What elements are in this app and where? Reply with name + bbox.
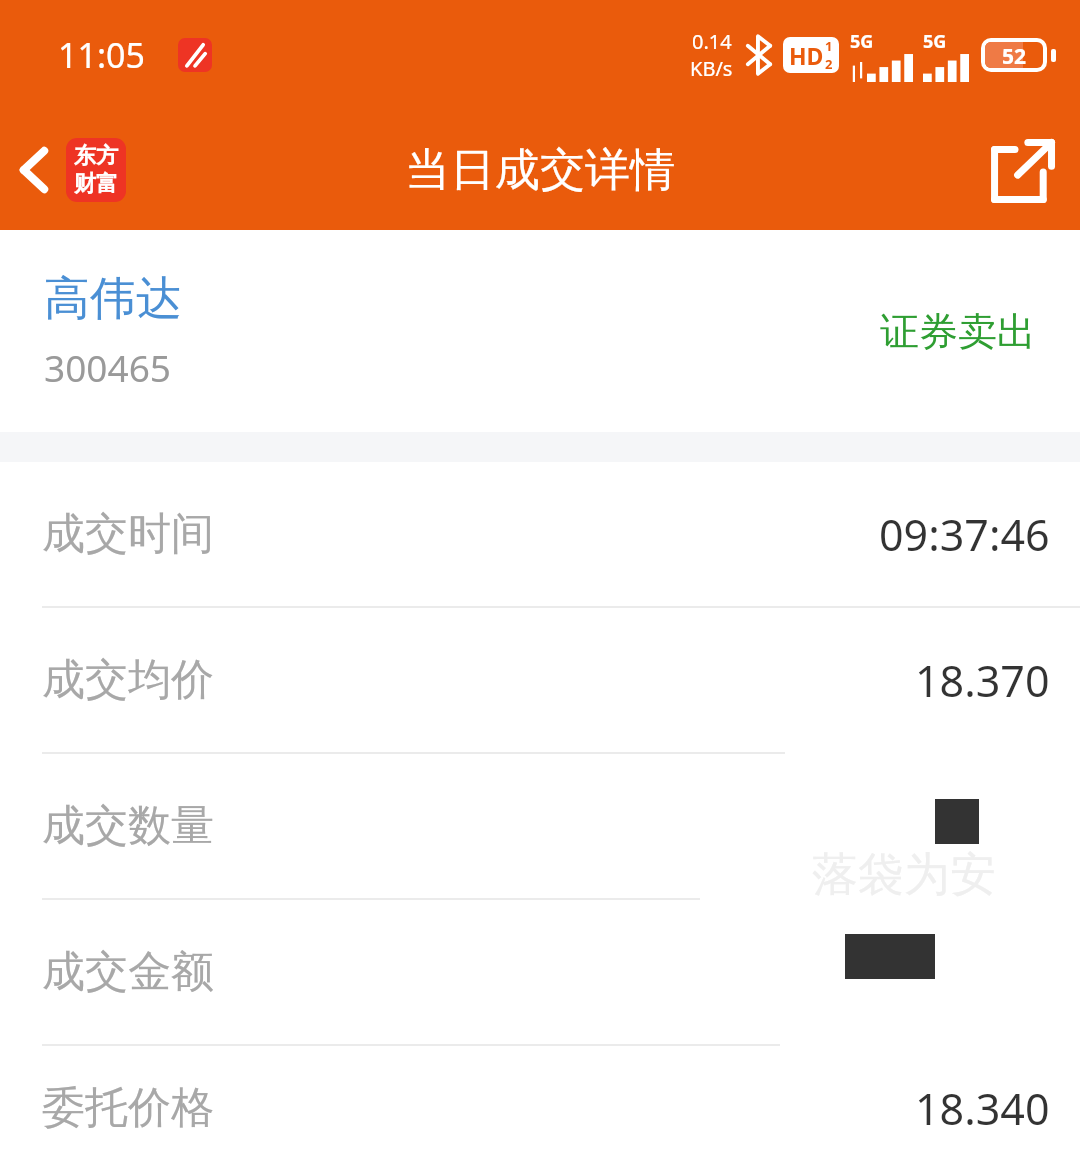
staticText: 2: [825, 55, 833, 73]
staticText: 成交数量: [42, 799, 214, 853]
button[interactable]: 委托价格: [0, 1046, 1080, 1170]
staticText: 5G: [923, 29, 947, 54]
staticText: 5G: [850, 29, 874, 54]
staticText: KB/s: [690, 55, 733, 82]
staticText: 委托价格: [42, 1081, 214, 1135]
button[interactable]: 成交时间: [0, 462, 1080, 606]
staticText: 18.340: [915, 1079, 1050, 1138]
staticText: HD: [789, 40, 824, 71]
staticText: 财富: [74, 170, 118, 198]
staticText: 1: [825, 37, 833, 55]
button[interactable]: 成交数量: [0, 754, 1080, 898]
button[interactable]: Back: [0, 124, 138, 216]
button[interactable]: Share: [976, 124, 1080, 216]
staticText: 证券卖出: [880, 307, 1036, 356]
staticText: 高伟达: [44, 270, 182, 328]
button[interactable]: 成交均价: [0, 608, 1080, 752]
staticText: 52: [1002, 42, 1027, 68]
staticText: 落袋为安: [812, 846, 996, 904]
button[interactable]: 成交金额: [0, 900, 1080, 1044]
staticText: 11:05: [58, 32, 145, 78]
staticText: 18.370: [915, 651, 1050, 710]
staticText: 成交金额: [42, 945, 214, 999]
staticText: 成交时间: [42, 507, 214, 561]
staticText: 成交均价: [42, 653, 214, 707]
button[interactable]: 高伟达: [0, 230, 1080, 432]
staticText: 09:37:46: [879, 505, 1050, 564]
staticText: 0.14: [692, 28, 732, 55]
staticText: 300465: [44, 342, 171, 392]
staticText: 东方: [74, 142, 118, 170]
staticText: 当日成交详情: [405, 142, 675, 199]
